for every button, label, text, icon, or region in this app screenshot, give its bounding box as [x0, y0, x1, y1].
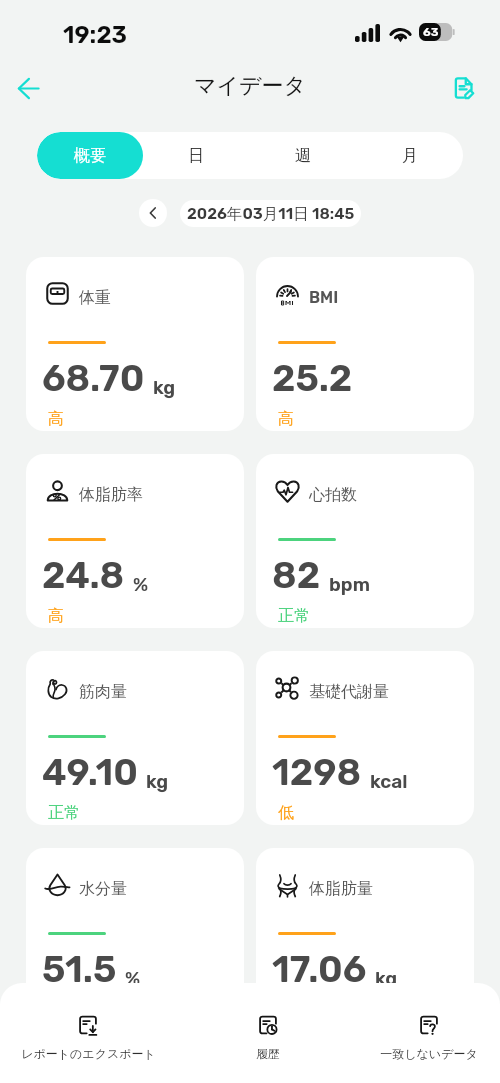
staticText: 低 [278, 803, 294, 823]
button[interactable]: 週 [249, 132, 356, 179]
staticText: 一致しないデータ [380, 1046, 478, 1061]
button[interactable]: 水分量 [26, 848, 244, 1022]
staticText: 25.2 [272, 356, 353, 400]
button[interactable]: Back [6, 66, 50, 110]
button[interactable]: 心拍数 [256, 454, 474, 628]
staticText: 高 [278, 409, 294, 429]
staticText: 19:23 [63, 21, 128, 49]
staticText: 49.10 [42, 750, 138, 794]
button[interactable]: 概要 [37, 132, 143, 179]
staticText: 82 [272, 553, 321, 597]
staticText: 正常 [278, 606, 310, 626]
staticText: kg [146, 770, 169, 793]
button[interactable]: 体脂肪率 [26, 454, 244, 628]
staticText: 正常 [48, 1000, 80, 1020]
button[interactable]: 履歴 [188, 1014, 348, 1061]
staticText: 履歴 [256, 1046, 280, 1061]
staticText: 51.5 [42, 947, 117, 991]
staticText: 概要 [74, 146, 106, 166]
staticText: 24.8 [42, 553, 125, 597]
staticText: 68.70 [42, 356, 145, 400]
staticText: 筋肉量 [79, 682, 127, 702]
button[interactable]: 月 [356, 132, 463, 179]
button[interactable]: 2026年03月11日 18:45 [180, 200, 361, 227]
staticText: 日 [188, 146, 204, 166]
staticText: 水分量 [79, 879, 127, 899]
staticText: bpm [329, 573, 370, 596]
staticText: 心拍数 [309, 485, 357, 505]
button[interactable]: 体脂肪量 [256, 848, 474, 1022]
staticText: 1298 [272, 750, 362, 794]
staticText: BMI [309, 288, 339, 307]
staticText: 基礎代謝量 [309, 682, 389, 702]
button[interactable]: 基礎代謝量 [256, 651, 474, 825]
staticText: 月 [402, 146, 418, 166]
button[interactable]: Edit [442, 66, 486, 110]
staticText: 高 [48, 409, 64, 429]
button[interactable]: 体重 [26, 257, 244, 431]
staticText: レポートのエクスポート [21, 1046, 156, 1061]
staticText: % [133, 573, 149, 596]
button[interactable]: 一致しないデータ [349, 1014, 500, 1061]
button[interactable]: BMI [256, 257, 474, 431]
staticText: 2026年03月11日 18:45 [187, 204, 355, 224]
staticText: 17.06 [272, 947, 367, 991]
button[interactable]: 筋肉量 [26, 651, 244, 825]
button[interactable]: Previous date [139, 199, 167, 227]
staticText: 体重 [79, 288, 111, 308]
staticText: kg [153, 376, 176, 399]
staticText: 63 [423, 25, 439, 39]
staticText: 高 [48, 606, 64, 626]
staticText: 正常 [48, 803, 80, 823]
staticText: kg [375, 967, 398, 990]
staticText: 週 [295, 146, 311, 166]
staticText: 体脂肪量 [309, 879, 373, 899]
button[interactable]: 日 [143, 132, 249, 179]
staticText: kcal [370, 770, 408, 793]
staticText: マイデータ [194, 72, 307, 100]
button[interactable]: レポートのエクスポート [8, 1014, 168, 1061]
staticText: % [125, 967, 141, 990]
staticText: 体脂肪率 [79, 485, 143, 505]
